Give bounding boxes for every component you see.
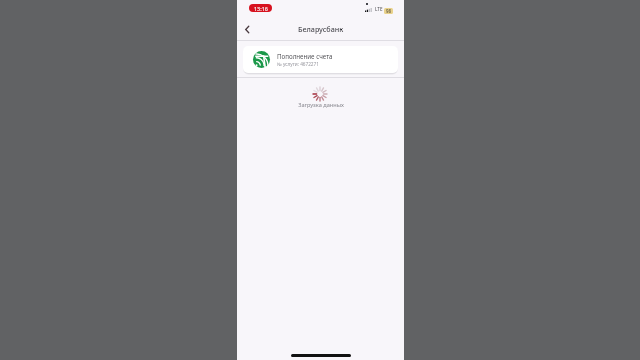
staticText: 13:16 (254, 5, 268, 12)
button[interactable]: Back (237, 18, 259, 40)
staticText: Загрузка данных (298, 101, 344, 109)
button[interactable]: Пополнение счета (243, 46, 398, 73)
staticText: № услуги: 4672271 (277, 61, 319, 67)
staticText: Беларусбанк (298, 24, 344, 34)
staticText: 98 (386, 8, 392, 14)
staticText: LTE (375, 6, 383, 12)
staticText: Пополнение счета (277, 52, 333, 60)
